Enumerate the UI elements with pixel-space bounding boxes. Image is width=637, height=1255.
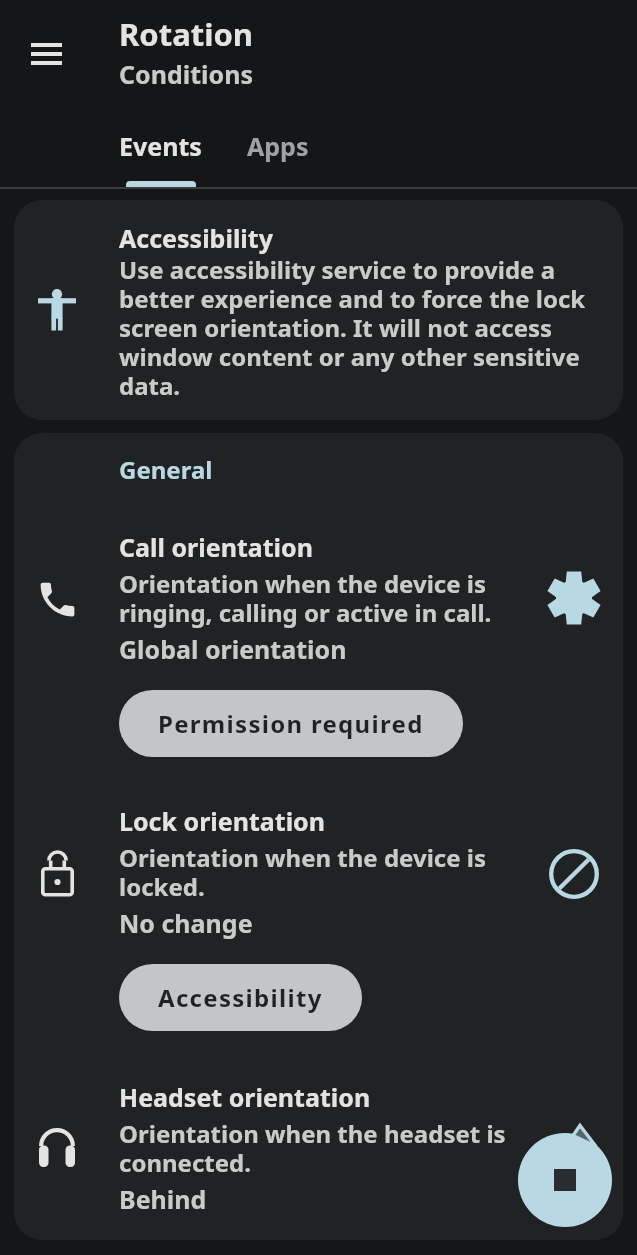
staticText: Global orientation (119, 632, 347, 666)
other: Call (35, 577, 80, 622)
staticText: Use accessibility service to provide a b… (119, 253, 595, 402)
staticText: Permission required (158, 707, 424, 740)
button[interactable]: Settings (539, 563, 609, 633)
button[interactable]: Navigation menu (15, 22, 78, 85)
staticText: Call orientation (119, 530, 313, 564)
staticText: Lock orientation (119, 804, 325, 838)
button[interactable]: Stop rotation service (518, 1133, 612, 1227)
staticText: Conditions (119, 57, 253, 91)
staticText: General (119, 453, 213, 486)
staticText: Apps (247, 129, 309, 163)
button[interactable]: Permission required (119, 690, 463, 757)
staticText: Headset orientation (119, 1080, 371, 1114)
button[interactable]: Apps (237, 129, 319, 189)
button[interactable]: Events (113, 129, 208, 189)
button[interactable]: Accessibility (14, 200, 623, 420)
other: Lock (41, 850, 74, 895)
staticText: No change (119, 906, 253, 940)
other: Headset (39, 1128, 75, 1167)
staticText: Rotation (119, 13, 253, 55)
staticText: Orientation when the device is ringing, … (119, 567, 539, 629)
button[interactable]: No change (539, 839, 609, 909)
staticText: Events (119, 129, 202, 163)
staticText: Orientation when the device is locked. (119, 841, 539, 903)
staticText: Accessibility (119, 221, 273, 255)
staticText: Orientation when the headset is connecte… (119, 1117, 539, 1179)
button[interactable]: Accessibility (119, 964, 362, 1031)
staticText: Accessibility (158, 981, 323, 1014)
staticText: Behind (119, 1182, 207, 1216)
